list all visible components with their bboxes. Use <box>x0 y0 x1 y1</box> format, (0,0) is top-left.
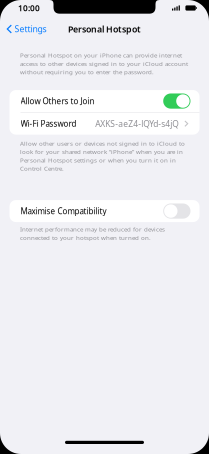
button[interactable]: Maximise Compatibility <box>9 200 199 222</box>
staticText: Wi-Fi Password <box>20 118 76 129</box>
button[interactable]: Wi-Fi Password <box>9 113 199 135</box>
staticText: Allow other users or devices not signed … <box>20 139 185 173</box>
button[interactable]: Allow Others to Join <box>9 90 199 112</box>
button[interactable]: Settings <box>0 19 47 39</box>
staticText: Allow Others to Join <box>20 96 94 106</box>
staticText: Personal Hotspot on your iPhone can prov… <box>20 51 188 76</box>
staticText: Maximise Compatibility <box>20 206 106 216</box>
staticText: Personal Hotspot <box>68 23 141 35</box>
staticText: AXKS-aeZ4-lQYd-s4jQ <box>95 118 179 129</box>
staticText: Settings <box>15 23 47 35</box>
staticText: Internet performance may be reduced for … <box>20 225 165 242</box>
staticText: 10:00 <box>18 2 40 14</box>
